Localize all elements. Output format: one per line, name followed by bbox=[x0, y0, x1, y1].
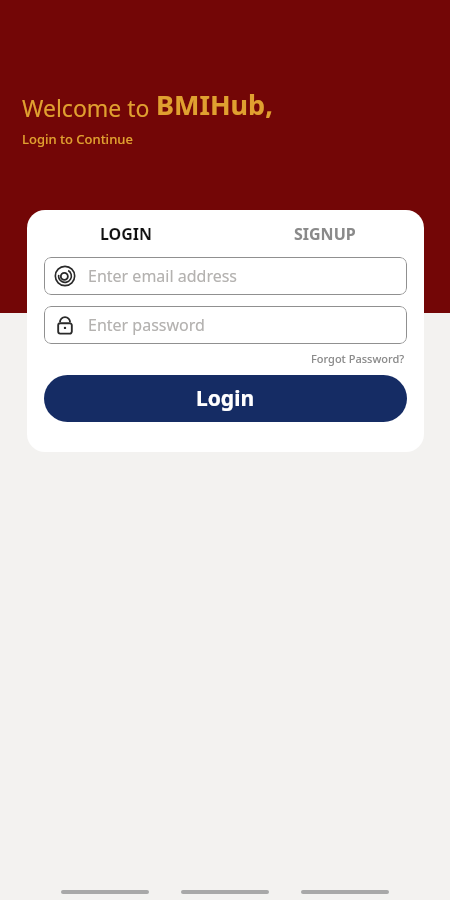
staticText: Enter password bbox=[88, 314, 205, 336]
button[interactable]: Login bbox=[44, 375, 407, 422]
staticText: Login to Continue bbox=[22, 130, 133, 148]
staticText: LOGIN bbox=[100, 223, 153, 245]
other: Email bbox=[54, 265, 76, 287]
button[interactable]: Password bbox=[44, 306, 407, 344]
staticText: Welcome to bbox=[22, 92, 156, 123]
staticText: SIGNUP bbox=[294, 223, 356, 245]
other: Password bbox=[54, 314, 76, 336]
staticText: Forgot Password? bbox=[311, 351, 405, 366]
button[interactable]: LOGIN bbox=[27, 210, 225, 257]
button[interactable]: Email bbox=[44, 257, 407, 295]
button[interactable]: SIGNUP bbox=[225, 210, 424, 257]
staticText: BMIHub, bbox=[156, 86, 273, 123]
staticText: Enter email address bbox=[88, 265, 238, 287]
staticText: Login bbox=[196, 384, 255, 413]
button[interactable]: Forgot Password? bbox=[309, 349, 407, 368]
